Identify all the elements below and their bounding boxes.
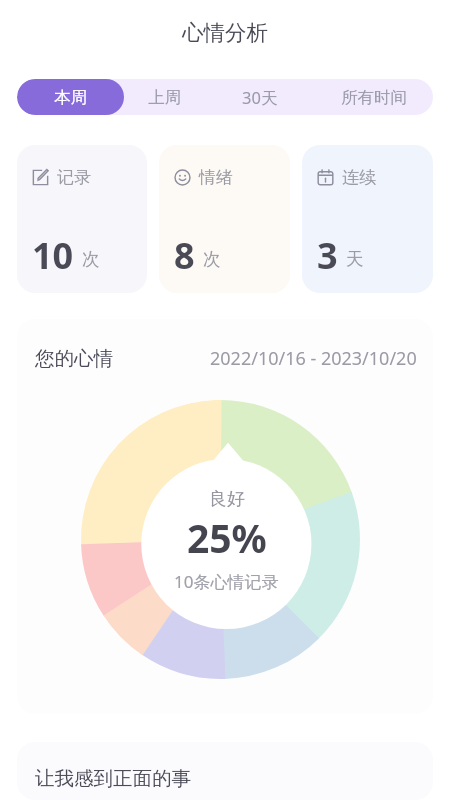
button[interactable]: 连续: [302, 145, 433, 293]
button[interactable]: 30天: [205, 79, 315, 115]
staticText: 次: [82, 248, 100, 270]
staticText: 本周: [54, 87, 87, 108]
button[interactable]: 让我感到正面的事: [17, 742, 433, 800]
staticText: 10: [32, 231, 74, 280]
staticText: 25%: [187, 511, 267, 564]
staticText: 情绪: [199, 167, 233, 188]
button[interactable]: 情绪: [159, 145, 290, 293]
staticText: 上周: [148, 87, 181, 108]
staticText: 30天: [242, 86, 278, 109]
staticText: 10条心情记录: [174, 570, 279, 593]
staticText: 您的心情: [35, 346, 113, 371]
staticText: 连续: [342, 167, 376, 188]
staticText: 8: [174, 231, 195, 280]
staticText: 心情分析: [182, 19, 268, 46]
staticText: 天: [346, 248, 364, 270]
staticText: 次: [203, 248, 221, 270]
staticText: 良好: [209, 488, 245, 511]
button[interactable]: 本周: [17, 79, 124, 115]
staticText: 3: [317, 231, 338, 280]
button[interactable]: 记录: [17, 145, 147, 293]
staticText: 让我感到正面的事: [35, 766, 191, 791]
staticText: 所有时间: [341, 87, 407, 108]
staticText: 2022/10/16 - 2023/10/20: [210, 346, 417, 371]
button[interactable]: 所有时间: [315, 79, 433, 115]
button[interactable]: 上周: [124, 79, 205, 115]
staticText: 记录: [57, 167, 91, 188]
